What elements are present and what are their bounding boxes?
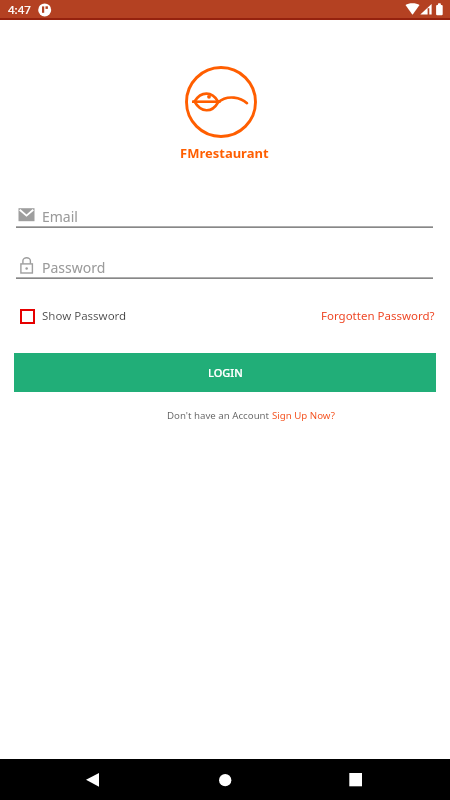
button[interactable]: Forgotten Password? (321, 308, 435, 324)
staticText: Email (42, 207, 78, 225)
button[interactable]: Home (195, 759, 256, 800)
staticText: Don't have an Account (167, 409, 272, 422)
staticText: FMrestaurant (180, 144, 269, 162)
button[interactable]: Back (62, 759, 123, 800)
staticText: 4:47 (8, 2, 31, 18)
button[interactable]: LOGIN (14, 353, 436, 392)
staticText: LOGIN (208, 365, 243, 380)
button[interactable]: Recent apps (325, 759, 386, 800)
staticText: Show Password (42, 308, 127, 324)
button[interactable]: Sign Up Now? (272, 409, 335, 422)
button[interactable]: Show Password (20, 308, 127, 324)
staticText: Password (42, 258, 106, 276)
